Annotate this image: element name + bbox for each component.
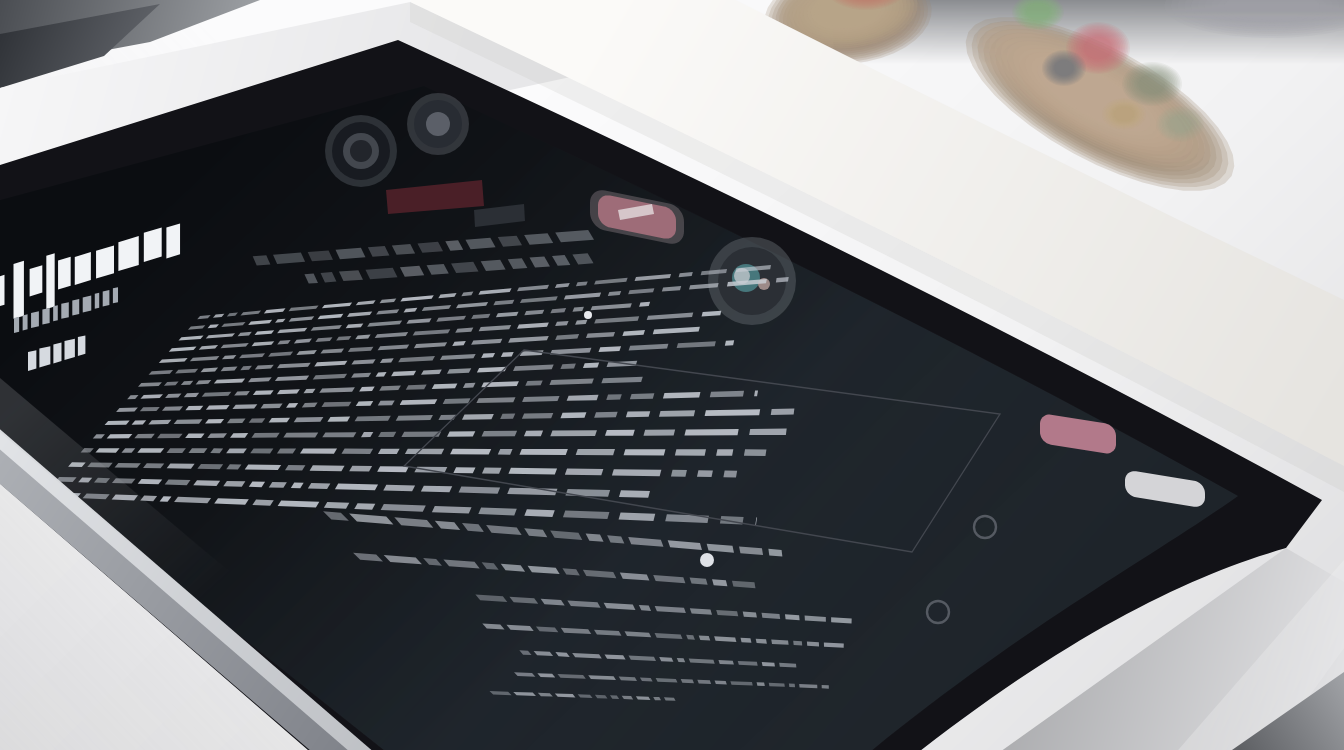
button[interactable]: Search bbox=[1122, 470, 1214, 510]
button[interactable]: Camera bbox=[404, 88, 476, 160]
button[interactable]: Photos bbox=[586, 194, 690, 242]
button[interactable]: Open app bbox=[1034, 414, 1126, 458]
button[interactable]: Settings bbox=[322, 112, 402, 192]
button[interactable]: Shinwuh Labs bbox=[0, 250, 200, 380]
button[interactable]: Home bbox=[914, 588, 962, 636]
button[interactable]: Back bbox=[962, 504, 1010, 552]
button[interactable]: Browser bbox=[706, 250, 800, 314]
